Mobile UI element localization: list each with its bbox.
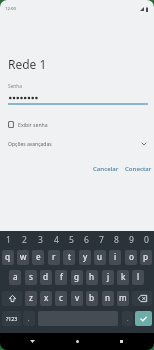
button[interactable]: w bbox=[17, 250, 29, 265]
staticText: 9 bbox=[129, 234, 134, 246]
staticText: . bbox=[127, 315, 129, 323]
staticText: x bbox=[44, 292, 49, 303]
button[interactable]: 7 bbox=[94, 231, 109, 250]
staticText: j bbox=[107, 271, 110, 282]
staticText: 1 bbox=[6, 234, 11, 246]
staticText: 3 bbox=[38, 234, 43, 246]
staticText: m bbox=[119, 292, 127, 303]
staticText: z bbox=[29, 292, 33, 303]
staticText: o bbox=[129, 251, 134, 262]
button[interactable]: 4 bbox=[48, 231, 64, 250]
staticText: Conectar bbox=[125, 164, 152, 172]
staticText: Senha bbox=[8, 83, 22, 90]
button[interactable]: e bbox=[32, 250, 44, 265]
button[interactable]: 1 bbox=[0, 231, 16, 250]
button[interactable]: x bbox=[40, 291, 52, 306]
staticText: 0 bbox=[144, 234, 149, 246]
staticText: g bbox=[74, 271, 80, 282]
staticText: Rede 1 bbox=[8, 56, 47, 72]
staticText: 2 bbox=[22, 234, 27, 246]
staticText: q bbox=[5, 251, 11, 262]
button[interactable]: Exibir senha bbox=[0, 118, 154, 131]
button[interactable]: 3 bbox=[32, 231, 48, 250]
button[interactable]: g bbox=[71, 270, 83, 285]
button[interactable]: d bbox=[40, 270, 52, 285]
staticText: 5 bbox=[69, 234, 74, 246]
button[interactable]: Opções avançadas bbox=[0, 138, 154, 150]
button[interactable]: i bbox=[109, 250, 121, 265]
staticText: Opções avançadas bbox=[8, 141, 52, 148]
staticText: 12:00 bbox=[5, 5, 16, 11]
staticText: s bbox=[29, 271, 33, 282]
staticText: p bbox=[143, 251, 149, 262]
staticText: i bbox=[114, 251, 117, 262]
staticText: a bbox=[13, 271, 18, 282]
button[interactable]: v bbox=[71, 291, 83, 306]
button[interactable]: Backspace bbox=[132, 291, 152, 306]
staticText: e bbox=[36, 251, 41, 262]
button[interactable]: n bbox=[102, 291, 114, 306]
staticText: 8 bbox=[114, 234, 119, 246]
button[interactable]: 2 bbox=[16, 231, 32, 250]
button[interactable]: j bbox=[102, 270, 114, 285]
staticText: Cancelar bbox=[93, 164, 119, 172]
staticText: 4 bbox=[54, 234, 59, 246]
staticText: c bbox=[59, 292, 63, 303]
staticText: b bbox=[89, 292, 95, 303]
button[interactable]: l bbox=[132, 270, 144, 285]
staticText: k bbox=[121, 271, 126, 282]
button[interactable]: s bbox=[25, 270, 37, 285]
button[interactable]: 0 bbox=[139, 231, 154, 250]
button[interactable]: u bbox=[94, 250, 106, 265]
button[interactable]: q bbox=[2, 250, 14, 265]
button[interactable]: f bbox=[55, 270, 67, 285]
button[interactable]: Recents bbox=[111, 333, 131, 350]
button[interactable]: o bbox=[125, 250, 137, 265]
staticText: y bbox=[83, 251, 88, 262]
staticText: l bbox=[137, 271, 140, 282]
button[interactable]: a bbox=[9, 270, 21, 285]
button[interactable]: t bbox=[63, 250, 75, 265]
button[interactable]: h bbox=[86, 270, 98, 285]
button[interactable]: y bbox=[79, 250, 91, 265]
staticText: 7 bbox=[99, 234, 104, 246]
button[interactable]: z bbox=[25, 291, 37, 306]
button[interactable]: ?123 bbox=[2, 311, 21, 326]
button[interactable]: Conectar bbox=[123, 161, 154, 175]
button[interactable]: Enter bbox=[135, 311, 152, 326]
button[interactable]: Home bbox=[67, 333, 87, 350]
staticText: r bbox=[52, 251, 56, 262]
button[interactable]: Period bbox=[122, 311, 133, 326]
button[interactable]: Cancelar bbox=[91, 161, 121, 175]
button[interactable]: p bbox=[140, 250, 152, 265]
button[interactable]: b bbox=[86, 291, 98, 306]
button[interactable]: c bbox=[55, 291, 67, 306]
staticText: u bbox=[97, 251, 103, 262]
staticText: Exibir senha bbox=[18, 121, 48, 128]
staticText: t bbox=[68, 251, 71, 262]
button[interactable]: r bbox=[48, 250, 60, 265]
button[interactable]: 6 bbox=[79, 231, 94, 250]
button[interactable]: k bbox=[117, 270, 129, 285]
button[interactable]: 5 bbox=[64, 231, 79, 250]
staticText: ?123 bbox=[6, 315, 18, 322]
staticText: 6 bbox=[84, 234, 89, 246]
button[interactable]: 8 bbox=[109, 231, 124, 250]
button[interactable]: Shift bbox=[2, 291, 22, 306]
button[interactable]: m bbox=[117, 291, 129, 306]
staticText: d bbox=[43, 271, 49, 282]
button[interactable]: 9 bbox=[124, 231, 139, 250]
staticText: f bbox=[60, 271, 63, 282]
button[interactable]: Back bbox=[22, 333, 42, 350]
staticText: h bbox=[89, 271, 95, 282]
button[interactable]: Comma bbox=[23, 311, 35, 326]
staticText: n bbox=[105, 292, 111, 303]
staticText: , bbox=[28, 315, 30, 323]
staticText: w bbox=[20, 251, 27, 262]
staticText: v bbox=[75, 292, 80, 303]
